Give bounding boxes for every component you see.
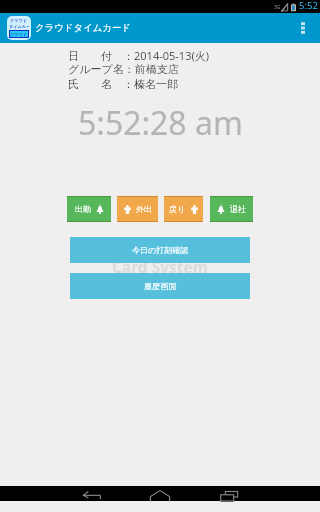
staticText: 3G — [274, 4, 281, 11]
button[interactable]: More options — [300, 13, 320, 43]
button[interactable]: Home — [144, 486, 176, 501]
staticText: 外出 — [136, 204, 152, 214]
staticText: グループ名：前橋支店 — [68, 62, 179, 76]
staticText: 今日の打刻確認 — [132, 245, 189, 255]
staticText: 5:52 — [299, 0, 318, 12]
staticText: 氏 名 ：榛名一郎 — [68, 76, 178, 90]
staticText: クラウド — [10, 18, 28, 23]
staticText: 日 付 ：2014-05-13(火) — [68, 48, 210, 62]
staticText: 戻り — [169, 204, 186, 214]
button[interactable]: 退社 — [210, 197, 253, 221]
staticText: 退社 — [230, 204, 246, 214]
staticText: 5:52:28 am — [78, 101, 243, 145]
staticText: クラウドタイムカード — [35, 22, 131, 34]
staticText: Card System — [112, 256, 208, 277]
staticText: 履歴画面 — [144, 281, 176, 291]
button[interactable]: Recent apps — [213, 486, 245, 501]
button[interactable]: 外出 — [117, 197, 158, 221]
staticText: 出勤 — [75, 204, 91, 214]
button[interactable]: Back — [76, 486, 108, 501]
button[interactable]: 今日の打刻確認 — [70, 237, 250, 263]
button[interactable]: 履歴画面 — [70, 273, 250, 299]
staticText: クラウド — [10, 32, 28, 37]
button[interactable]: 戻り — [164, 197, 203, 221]
staticText: タイムカード — [9, 24, 29, 29]
button[interactable]: 出勤 — [67, 197, 111, 221]
